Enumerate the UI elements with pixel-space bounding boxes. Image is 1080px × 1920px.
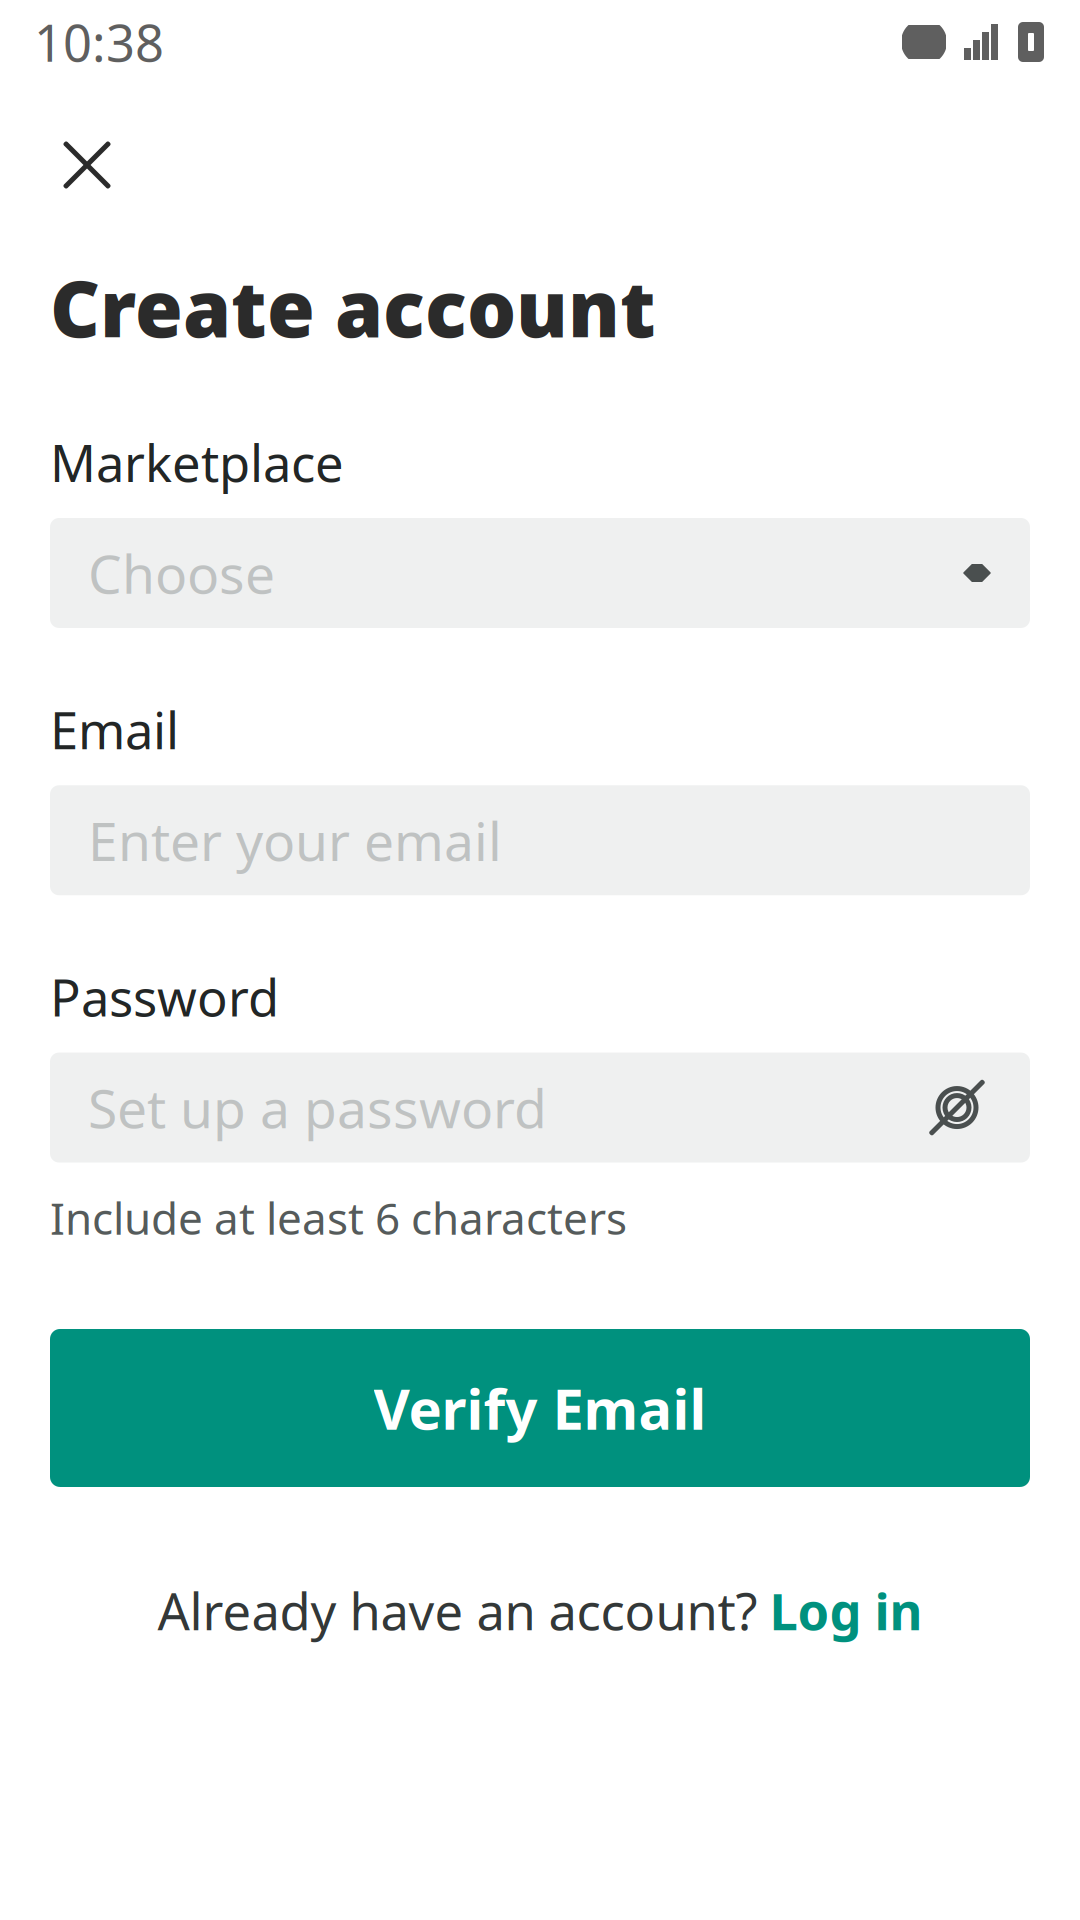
staticText: Set up a password <box>88 1072 547 1143</box>
staticText: Choose <box>88 538 275 608</box>
staticText: Password <box>50 963 279 1031</box>
staticText: Create account <box>50 256 656 359</box>
staticText: Log in <box>769 1577 922 1644</box>
staticText: Email <box>50 696 179 763</box>
button[interactable]: Close <box>44 122 130 208</box>
staticText: Verify Email <box>373 1371 706 1445</box>
button[interactable]: Enter your email <box>50 785 1030 895</box>
staticText: Enter your email <box>88 805 502 876</box>
staticText: Marketplace <box>50 429 344 496</box>
staticText: 10:38 <box>34 8 164 76</box>
staticText: Include at least 6 characters <box>50 1188 627 1247</box>
staticText: Already have an account? <box>157 1577 757 1644</box>
button[interactable]: Verify Email <box>50 1329 1030 1487</box>
button[interactable]: Choose <box>50 518 1030 628</box>
button[interactable]: Already have an account? <box>0 1563 1080 1658</box>
button[interactable]: Set up a password <box>50 1052 1030 1162</box>
